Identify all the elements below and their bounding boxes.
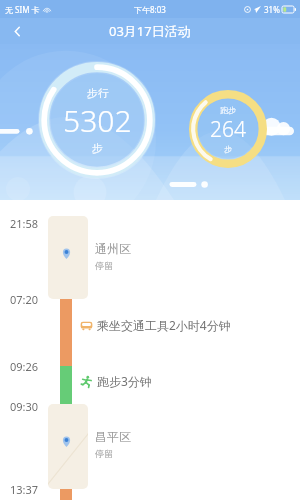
staticText: 5302 xyxy=(63,100,132,141)
staticText: 停留 xyxy=(95,448,113,459)
staticText: 跑步 xyxy=(220,105,236,115)
staticText: 13:37 xyxy=(10,482,39,497)
button[interactable]: 跑步3分钟 xyxy=(80,372,280,390)
button[interactable]: 跑步 xyxy=(188,89,268,169)
staticText: 09:26 xyxy=(10,359,39,374)
button[interactable]: 通州区 xyxy=(95,240,275,272)
button[interactable]: 乘坐交通工具2小时4分钟 xyxy=(80,316,280,334)
button[interactable]: 步行 xyxy=(38,61,156,179)
staticText: 09:30 xyxy=(10,399,39,414)
staticText: 03月17日活动 xyxy=(109,22,191,40)
button[interactable]: Back xyxy=(0,18,34,44)
staticText: 步 xyxy=(92,141,103,155)
button[interactable]: 昌平区 xyxy=(95,428,275,460)
staticText: 停留 xyxy=(95,260,113,271)
staticText: 31% xyxy=(264,4,280,15)
staticText: 无 SIM 卡 xyxy=(5,4,40,15)
staticText: 步行 xyxy=(87,86,109,100)
staticText: 下午8:03 xyxy=(134,4,166,15)
staticText: 07:20 xyxy=(10,292,39,307)
staticText: 通州区 xyxy=(95,241,131,256)
staticText: 昌平区 xyxy=(95,429,131,444)
staticText: 21:58 xyxy=(10,216,39,231)
staticText: 乘坐交通工具2小时4分钟 xyxy=(97,317,231,333)
staticText: 264 xyxy=(210,115,246,144)
staticText: 跑步3分钟 xyxy=(97,373,152,389)
staticText: 步 xyxy=(224,144,232,154)
